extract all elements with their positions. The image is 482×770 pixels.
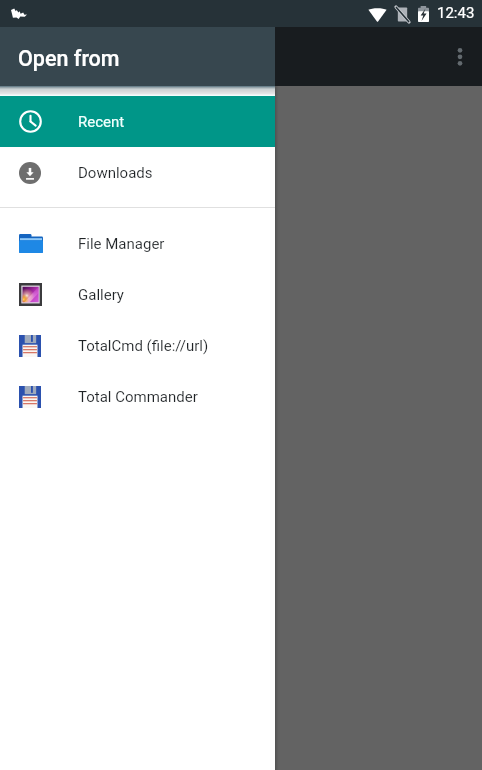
staticText: Downloads	[78, 164, 153, 182]
button[interactable]: Recent	[0, 96, 275, 147]
staticText: Total Commander	[78, 388, 198, 406]
button[interactable]: Total Commander	[0, 371, 275, 422]
button[interactable]: More options	[437, 34, 482, 80]
staticText: Open from	[18, 46, 120, 71]
button[interactable]: TotalCmd (file://url)	[0, 320, 275, 371]
staticText: 12:43	[437, 4, 475, 22]
staticText: Gallery	[78, 286, 124, 304]
staticText: Recent	[78, 113, 125, 131]
button[interactable]: Downloads	[0, 147, 275, 198]
button[interactable]: Gallery	[0, 269, 275, 320]
staticText: TotalCmd (file://url)	[78, 337, 209, 355]
button[interactable]: File Manager	[0, 218, 275, 269]
staticText: File Manager	[78, 235, 165, 253]
